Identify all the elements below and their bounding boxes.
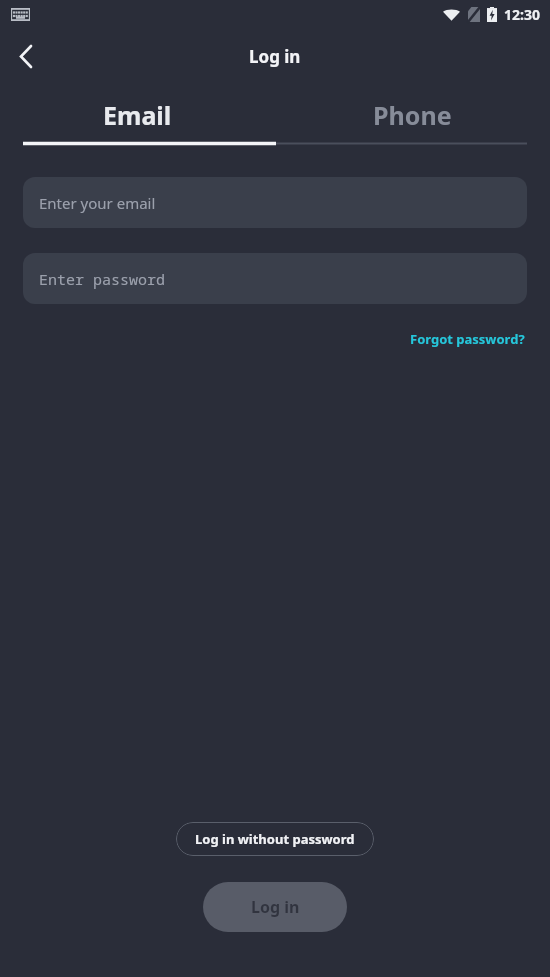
button[interactable]: Back	[0, 30, 52, 82]
button[interactable]: Enter your email	[23, 177, 527, 228]
staticText: 12:30	[504, 5, 540, 24]
button[interactable]: Log in	[203, 882, 347, 932]
button[interactable]: Enter password	[23, 253, 527, 304]
button[interactable]: Forgot password?	[408, 326, 527, 352]
staticText: Log in	[251, 896, 300, 918]
staticText: Log in without password	[195, 830, 355, 848]
button[interactable]: Phone	[275, 84, 550, 146]
staticText: Forgot password?	[410, 330, 525, 348]
staticText: Phone	[373, 98, 452, 132]
staticText: Enter password	[39, 269, 166, 289]
staticText: Log in	[249, 45, 301, 68]
staticText: Email	[103, 98, 172, 132]
staticText: Enter your email	[39, 193, 156, 213]
button[interactable]: Log in without password	[176, 822, 374, 856]
button[interactable]: Email	[0, 84, 275, 146]
